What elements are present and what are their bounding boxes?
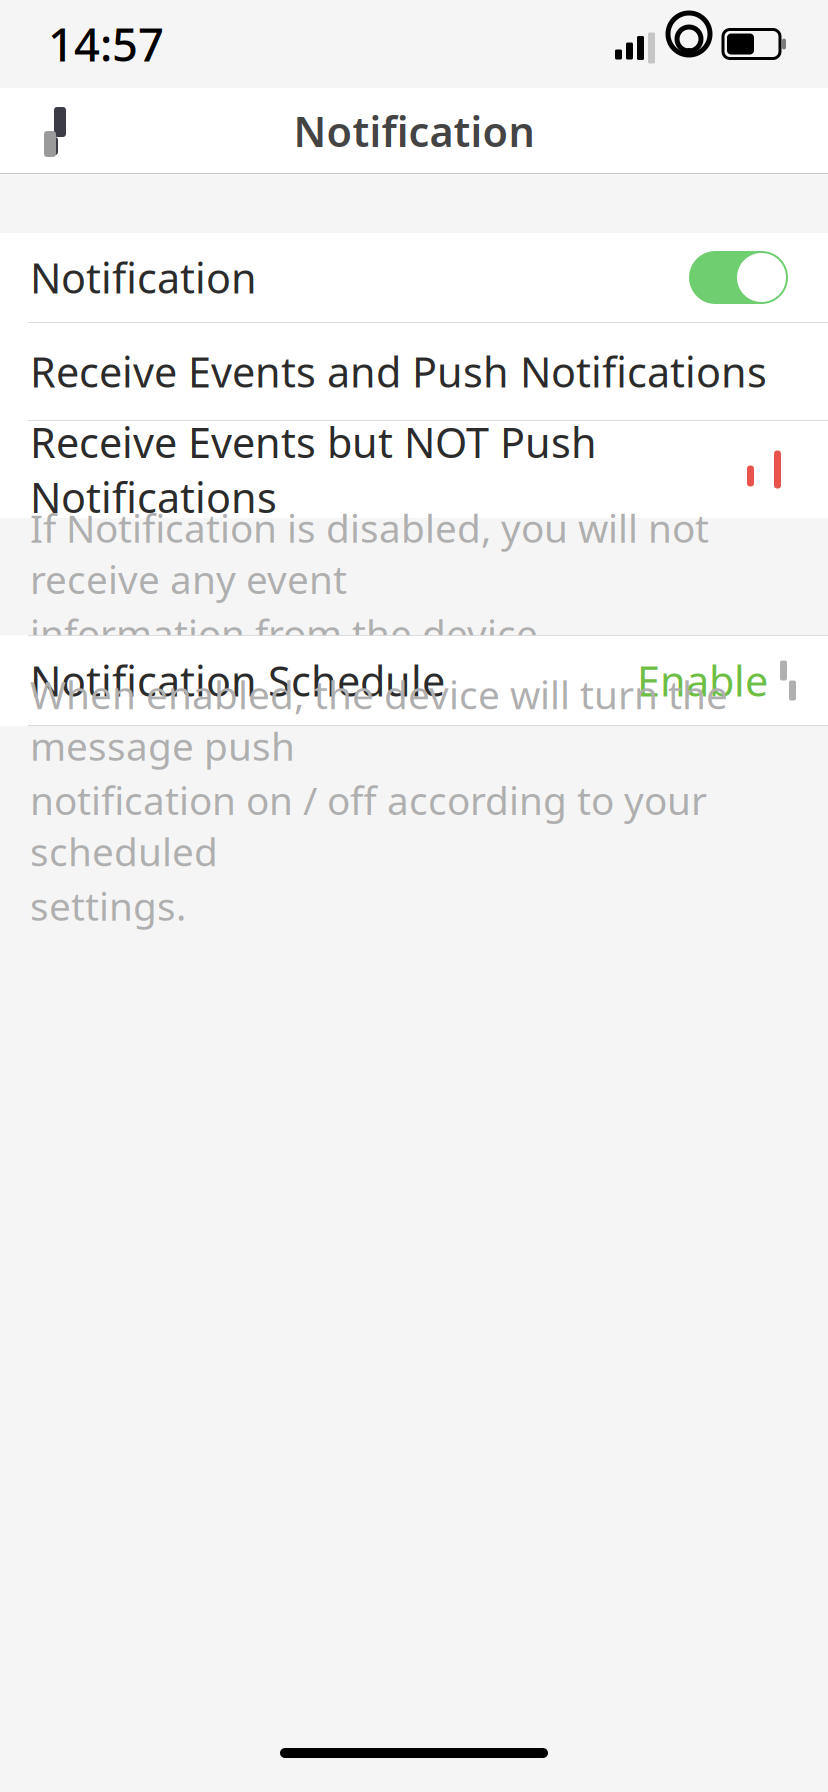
button[interactable]: Receive Events but NOT Push Notification… <box>0 421 828 518</box>
button[interactable]: Notification Schedule <box>0 636 828 725</box>
button[interactable]: Receive Events and Push Notifications <box>0 323 828 420</box>
staticText: 14:57 <box>48 14 164 74</box>
staticText: Notification Schedule <box>30 653 445 708</box>
staticText: Notification <box>30 250 257 305</box>
staticText: settings. <box>30 880 186 931</box>
staticText: Receive Events and Push Notifications <box>30 344 767 399</box>
staticText: Enable <box>637 653 768 708</box>
button[interactable]: Back <box>0 88 96 174</box>
button[interactable]: Notification <box>0 233 828 322</box>
staticText: information from the device. <box>30 608 548 659</box>
staticText: Receive Events but NOT Push Notification… <box>30 415 597 524</box>
staticText: When enabled, the device will turn the m… <box>30 669 728 771</box>
staticText: If Notification is disabled, you will no… <box>30 502 709 605</box>
staticText: Notification <box>293 104 534 158</box>
staticText: notification on / off according to your … <box>30 774 707 877</box>
